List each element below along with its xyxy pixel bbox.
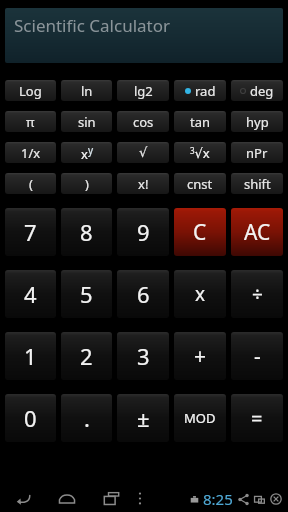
button[interactable]: 3√x bbox=[174, 142, 226, 163]
button[interactable]: Close bbox=[270, 493, 282, 505]
button[interactable]: - bbox=[231, 332, 283, 380]
button[interactable]: 3 bbox=[117, 332, 169, 380]
button[interactable]: lg2 bbox=[117, 80, 169, 101]
staticText: 3√x bbox=[190, 144, 210, 162]
staticText: - bbox=[254, 342, 261, 371]
staticText: 8 bbox=[80, 217, 93, 247]
button[interactable]: tan bbox=[174, 111, 226, 132]
button[interactable]: Scientific Calculator bbox=[5, 8, 283, 63]
button[interactable]: MOD bbox=[174, 394, 226, 442]
staticText: sin bbox=[78, 113, 96, 131]
button[interactable]: C bbox=[174, 208, 226, 256]
button[interactable]: 6 bbox=[117, 270, 169, 318]
button[interactable]: ( bbox=[5, 173, 56, 194]
button[interactable]: = bbox=[231, 394, 283, 442]
button[interactable]: More options bbox=[128, 485, 152, 512]
staticText: . bbox=[84, 403, 90, 433]
button[interactable]: 2 bbox=[61, 332, 112, 380]
button[interactable]: nPr bbox=[231, 142, 283, 163]
staticText: 8:25 bbox=[203, 489, 233, 509]
button[interactable]: AC bbox=[231, 208, 283, 256]
staticText: √ bbox=[139, 145, 148, 160]
staticText: nPr bbox=[246, 144, 268, 162]
staticText: MOD bbox=[184, 409, 216, 427]
button[interactable]: 5 bbox=[61, 270, 112, 318]
button[interactable]: 4 bbox=[5, 270, 56, 318]
button[interactable]: shift bbox=[231, 173, 283, 194]
button[interactable]: hyp bbox=[231, 111, 283, 132]
button[interactable]: Log bbox=[5, 80, 56, 101]
staticText: ( bbox=[29, 175, 33, 193]
button[interactable]: √ bbox=[117, 142, 169, 163]
staticText: C bbox=[193, 218, 207, 247]
staticText: Scientific Calculator bbox=[14, 14, 171, 37]
staticText: deg bbox=[250, 82, 274, 100]
button[interactable]: Back bbox=[8, 485, 38, 512]
button[interactable]: deg bbox=[231, 80, 283, 101]
staticText: 6 bbox=[137, 279, 150, 309]
staticText: tan bbox=[190, 113, 211, 131]
button[interactable]: x! bbox=[117, 173, 169, 194]
button[interactable]: 0 bbox=[5, 394, 56, 442]
button[interactable]: 7 bbox=[5, 208, 56, 256]
staticText: x! bbox=[138, 175, 149, 193]
staticText: + bbox=[194, 342, 207, 371]
button[interactable]: 1/x bbox=[5, 142, 56, 163]
button[interactable]: sin bbox=[61, 111, 112, 132]
staticText: 1 bbox=[24, 341, 37, 371]
staticText: ln bbox=[81, 82, 93, 100]
button[interactable]: . bbox=[61, 394, 112, 442]
button[interactable]: Share bbox=[238, 494, 249, 505]
staticText: hyp bbox=[246, 113, 269, 131]
staticText: = bbox=[251, 405, 263, 432]
staticText: 5 bbox=[80, 279, 93, 309]
staticText: rad bbox=[195, 82, 216, 100]
button[interactable]: cnst bbox=[174, 173, 226, 194]
staticText: 2 bbox=[80, 341, 93, 371]
button[interactable]: rad bbox=[174, 80, 226, 101]
button[interactable]: Home bbox=[52, 485, 82, 512]
staticText: π bbox=[26, 113, 35, 131]
button[interactable]: 9 bbox=[117, 208, 169, 256]
button[interactable]: 8 bbox=[61, 208, 112, 256]
staticText: ± bbox=[137, 403, 150, 433]
staticText: 0 bbox=[24, 403, 37, 433]
button[interactable]: π bbox=[5, 111, 56, 132]
button[interactable]: Screenshot bbox=[254, 494, 265, 505]
button[interactable]: ÷ bbox=[231, 270, 283, 318]
button[interactable]: 1 bbox=[5, 332, 56, 380]
staticText: shift bbox=[244, 175, 271, 193]
staticText: AC bbox=[244, 218, 271, 247]
button[interactable]: cos bbox=[117, 111, 169, 132]
button[interactable]: + bbox=[174, 332, 226, 380]
staticText: Log bbox=[19, 82, 42, 100]
staticText: cnst bbox=[187, 175, 213, 193]
staticText: 1/x bbox=[21, 144, 41, 162]
button[interactable]: ln bbox=[61, 80, 112, 101]
staticText: xy bbox=[81, 143, 93, 163]
button[interactable]: x bbox=[174, 270, 226, 318]
button[interactable]: Recent apps bbox=[96, 485, 126, 512]
staticText: cos bbox=[133, 113, 154, 131]
staticText: 9 bbox=[137, 217, 150, 247]
staticText: lg2 bbox=[134, 82, 153, 100]
button[interactable]: ) bbox=[61, 173, 112, 194]
staticText: ) bbox=[85, 175, 89, 193]
staticText: x bbox=[195, 281, 206, 307]
button[interactable]: ± bbox=[117, 394, 169, 442]
staticText: 7 bbox=[24, 217, 37, 247]
button[interactable]: xy bbox=[61, 142, 112, 163]
staticText: 4 bbox=[24, 279, 37, 309]
staticText: 3 bbox=[137, 341, 150, 371]
staticText: ÷ bbox=[252, 281, 263, 307]
